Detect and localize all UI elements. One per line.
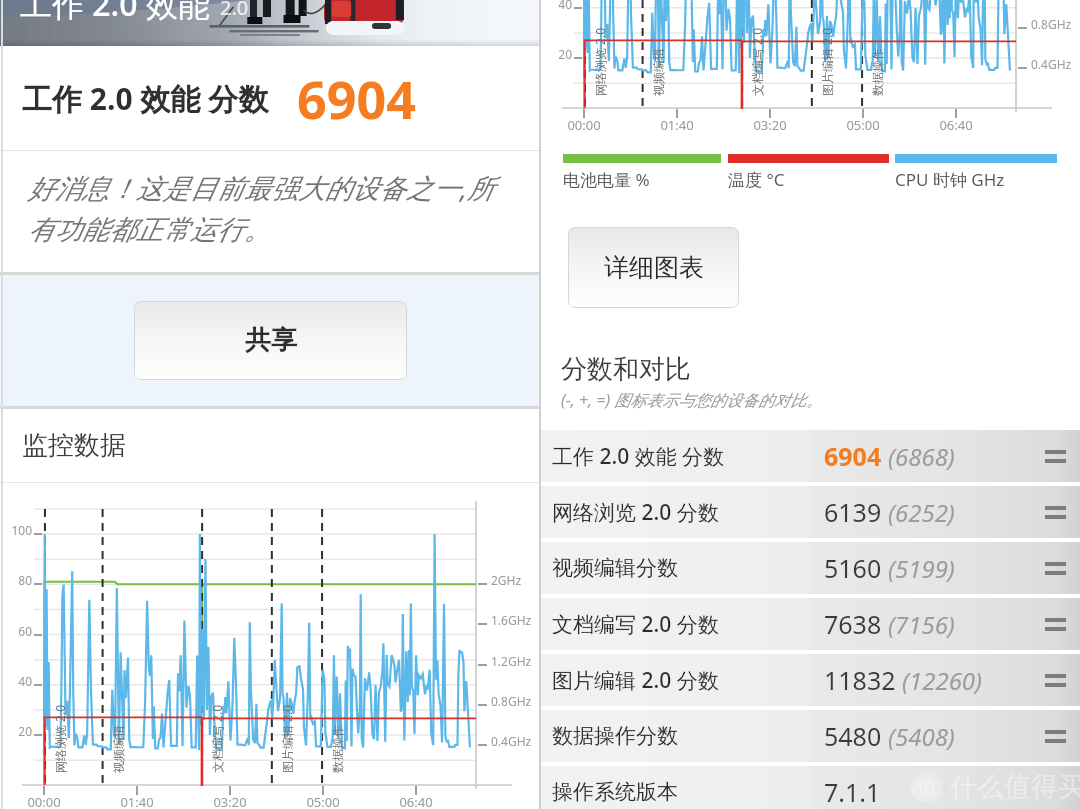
other: Equal to your device <box>1038 495 1072 529</box>
staticText: (6252) <box>888 496 955 529</box>
button[interactable]: 工作 2.0 效能 分数 <box>540 430 1080 482</box>
other: Equal to your device <box>1038 607 1072 641</box>
button[interactable]: 视频编辑分数 <box>540 542 1080 594</box>
staticText: 网络浏览 2.0 <box>592 27 608 96</box>
staticText: 值 <box>917 775 937 800</box>
button[interactable]: 图片编辑 2.0 分数 <box>540 654 1080 706</box>
staticText: 01:40 <box>645 116 709 134</box>
staticText: 分数和对比 <box>561 353 691 386</box>
staticText: 图片编辑 2.0 <box>819 27 835 96</box>
staticText: 0.8GHz <box>1031 16 1072 32</box>
staticText: 00:00 <box>552 116 616 134</box>
staticText: 工作 2.0 效能 分数 <box>22 78 269 119</box>
staticText: 1.6GHz <box>491 612 532 628</box>
staticText: 6139 <box>824 495 882 529</box>
staticText: 7.1.1 <box>824 775 881 809</box>
staticText: 图片编辑 2.0 <box>279 704 295 773</box>
staticText: 5160 <box>824 551 882 585</box>
staticText: 文档编写 2.0 <box>749 27 765 96</box>
other: Equal to your device <box>1038 439 1072 473</box>
staticText: 视频编辑分数 <box>552 555 678 581</box>
staticText: 06:40 <box>924 116 988 134</box>
staticText: 40 <box>0 673 32 689</box>
staticText: 0.4GHz <box>491 733 532 749</box>
staticText: 0.4GHz <box>1031 56 1072 72</box>
staticText: 视频编辑 <box>111 725 126 773</box>
staticText: 5480 <box>824 719 882 753</box>
staticText: (6868) <box>888 440 955 473</box>
staticText: 03:20 <box>198 793 262 809</box>
other: Equal to your device <box>1038 719 1072 753</box>
other: Equal to your device <box>1038 551 1072 585</box>
staticText: 03:20 <box>738 116 802 134</box>
staticText: 文档编写 2.0 分数 <box>552 610 719 639</box>
staticText: (-, +, =) 图标表示与您的设备的对比。 <box>561 389 823 411</box>
button[interactable]: 文档编写 2.0 分数 <box>540 598 1080 650</box>
staticText: 工作 2.0 效能 <box>20 0 210 26</box>
staticText: 数据操作分数 <box>552 723 678 749</box>
staticText: 60 <box>0 623 32 639</box>
staticText: 6904 <box>824 439 882 473</box>
staticText: 40 <box>528 0 572 12</box>
staticText: 详细图表 <box>604 252 704 283</box>
staticText: (5408) <box>888 720 955 753</box>
staticText: 操作系统版本 <box>552 779 678 805</box>
staticText: 7638 <box>824 607 882 641</box>
staticText: 2.0 <box>220 0 249 21</box>
staticText: 01:40 <box>105 793 169 809</box>
staticText: 监控数据 <box>22 429 126 462</box>
staticText: 数据操作 <box>870 48 885 96</box>
staticText: 20 <box>528 46 572 62</box>
staticText: 温度 °C <box>728 168 785 191</box>
staticText: 什么值得买 <box>950 770 1080 804</box>
staticText: 11832 <box>824 663 896 697</box>
staticText: 05:00 <box>831 116 895 134</box>
button[interactable]: 共享 <box>134 301 407 380</box>
staticText: 00:00 <box>12 793 76 809</box>
staticText: 20 <box>0 723 32 739</box>
button[interactable]: 操作系统版本 <box>540 766 1080 809</box>
button[interactable]: 详细图表 <box>568 227 739 308</box>
staticText: 工作 2.0 效能 分数 <box>552 442 725 471</box>
staticText: (12260) <box>902 664 983 697</box>
staticText: 0.8GHz <box>491 693 532 709</box>
staticText: 共享 <box>245 324 297 357</box>
staticText: 2GHz <box>491 572 522 588</box>
staticText: (5199) <box>888 552 955 585</box>
staticText: 网络浏览 2.0 <box>52 704 68 773</box>
staticText: 6904 <box>297 63 416 134</box>
staticText: 100 <box>0 522 32 538</box>
staticText: 好消息！这是目前最强大的设备之一,所有功能都正常运行。 <box>28 169 514 247</box>
staticText: 05:00 <box>291 793 355 809</box>
staticText: 网络浏览 2.0 分数 <box>552 498 719 527</box>
staticText: 数据操作 <box>330 725 345 773</box>
staticText: 06:40 <box>384 793 448 809</box>
button[interactable]: 数据操作分数 <box>540 710 1080 762</box>
staticText: 电池电量 % <box>563 168 650 191</box>
staticText: 80 <box>0 572 32 588</box>
staticText: CPU 时钟 GHz <box>895 168 1005 191</box>
other: Equal to your device <box>1038 663 1072 697</box>
staticText: 文档编写 2.0 <box>209 704 225 773</box>
staticText: 图片编辑 2.0 分数 <box>552 666 719 695</box>
staticText: (7156) <box>888 608 955 641</box>
button[interactable]: 网络浏览 2.0 分数 <box>540 486 1080 538</box>
staticText: 视频编辑 <box>651 48 666 96</box>
button[interactable]: 工作 2.0 效能 分数 <box>0 46 540 150</box>
staticText: 1.2GHz <box>491 653 532 669</box>
